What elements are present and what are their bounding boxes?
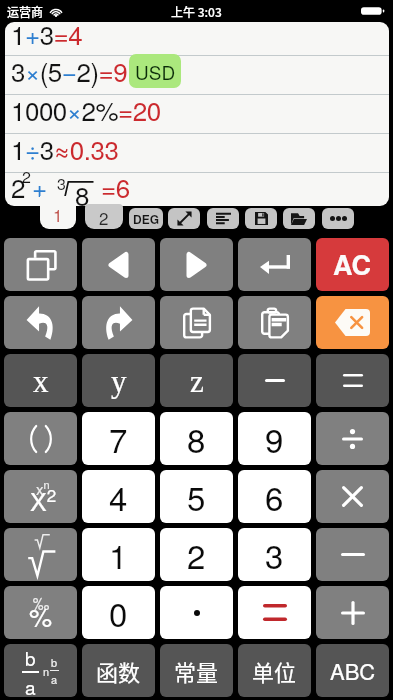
staticText: 1: [109, 531, 128, 578]
staticText: 单位: [252, 655, 297, 687]
staticText: ‰: [33, 592, 50, 615]
button[interactable]: Add: [316, 586, 389, 639]
button[interactable]: Fullscreen: [168, 208, 200, 229]
staticText: AC: [333, 245, 372, 284]
button[interactable]: 7: [82, 412, 155, 465]
button[interactable]: 常量: [160, 644, 233, 697]
staticText: 3: [57, 172, 66, 195]
button[interactable]: 4: [82, 470, 155, 523]
staticText: 1+3=4: [11, 22, 83, 48]
button[interactable]: ABC: [316, 644, 389, 697]
staticText: DEG: [133, 210, 160, 227]
button[interactable]: USD: [129, 54, 181, 88]
button[interactable]: Copy: [160, 296, 233, 349]
button[interactable]: 函数: [82, 644, 155, 697]
button[interactable]: Divide: [316, 412, 389, 465]
staticText: 3×(5−2)=9: [11, 52, 128, 89]
staticText: b: [25, 644, 36, 671]
button[interactable]: Fraction: [4, 644, 77, 697]
button[interactable]: 5: [160, 470, 233, 523]
button[interactable]: Equals: [316, 354, 389, 407]
staticText: y: [111, 364, 127, 398]
staticText: %: [29, 597, 53, 634]
button[interactable]: y: [82, 354, 155, 407]
button[interactable]: 0: [82, 586, 155, 639]
button[interactable]: 1: [40, 196, 76, 229]
staticText: 2: [22, 165, 31, 188]
button[interactable]: 6: [238, 470, 311, 523]
staticText: 7: [109, 415, 128, 462]
button[interactable]: 8: [160, 412, 233, 465]
staticText: a: [51, 671, 58, 687]
button[interactable]: z: [160, 354, 233, 407]
staticText: X2: [30, 482, 57, 518]
staticText: USD: [135, 58, 176, 85]
staticText: x: [33, 364, 49, 398]
button[interactable]: Multiply: [316, 470, 389, 523]
button[interactable]: DEG: [129, 208, 163, 229]
staticText: 1000×2%=20: [11, 91, 161, 128]
button[interactable]: 2: [160, 528, 233, 581]
button[interactable]: Minus: [238, 354, 311, 407]
staticText: 上午 3:03: [171, 3, 222, 20]
button[interactable]: More options: [322, 208, 354, 229]
staticText: 9: [265, 415, 284, 462]
staticText: 8: [75, 176, 90, 206]
button[interactable]: 9: [238, 412, 311, 465]
staticText: ABC: [330, 655, 376, 687]
button[interactable]: AC: [316, 238, 389, 291]
staticText: n: [43, 663, 50, 679]
staticText: 5: [187, 473, 206, 520]
button[interactable]: Move right: [160, 238, 233, 291]
button[interactable]: 2: [85, 204, 123, 229]
staticText: 运营商: [7, 3, 44, 20]
staticText: b: [51, 654, 58, 670]
button[interactable]: Equals: [238, 586, 311, 639]
button[interactable]: Delete: [316, 296, 389, 349]
staticText: +: [32, 168, 48, 201]
button[interactable]: Duplicate: [4, 238, 77, 291]
button[interactable]: Paste: [238, 296, 311, 349]
button[interactable]: Enter: [238, 238, 311, 291]
button[interactable]: 3: [238, 528, 311, 581]
button[interactable]: History: [207, 208, 239, 229]
button[interactable]: Move left: [82, 238, 155, 291]
staticText: 0: [109, 589, 128, 636]
staticText: 2: [187, 531, 206, 578]
button[interactable]: x: [4, 354, 77, 407]
staticText: 常量: [174, 655, 219, 687]
button[interactable]: Open: [283, 208, 315, 229]
staticText: 8: [187, 415, 206, 462]
button[interactable]: Save: [245, 208, 277, 229]
button[interactable]: 1: [82, 528, 155, 581]
staticText: =6: [101, 168, 130, 201]
button[interactable]: Subtract: [316, 528, 389, 581]
staticText: 6: [265, 473, 284, 520]
button[interactable]: Parentheses: [4, 412, 77, 465]
staticText: 1÷3≈0.33: [11, 130, 119, 167]
staticText: 函数: [96, 655, 141, 687]
staticText: a: [25, 673, 36, 697]
staticText: xn: [36, 476, 50, 499]
button[interactable]: Root: [4, 528, 77, 581]
button[interactable]: Redo: [82, 296, 155, 349]
staticText: 3: [265, 531, 284, 578]
button[interactable]: 单位: [238, 644, 311, 697]
button[interactable]: Percent: [4, 586, 77, 639]
button[interactable]: Decimal point: [160, 586, 233, 639]
button[interactable]: Power: [4, 470, 77, 523]
button[interactable]: Undo: [4, 296, 77, 349]
staticText: 1: [53, 202, 63, 226]
staticText: 4: [109, 473, 128, 520]
staticText: 2: [99, 205, 109, 229]
staticText: z: [190, 364, 204, 398]
staticText: 2: [11, 168, 26, 201]
